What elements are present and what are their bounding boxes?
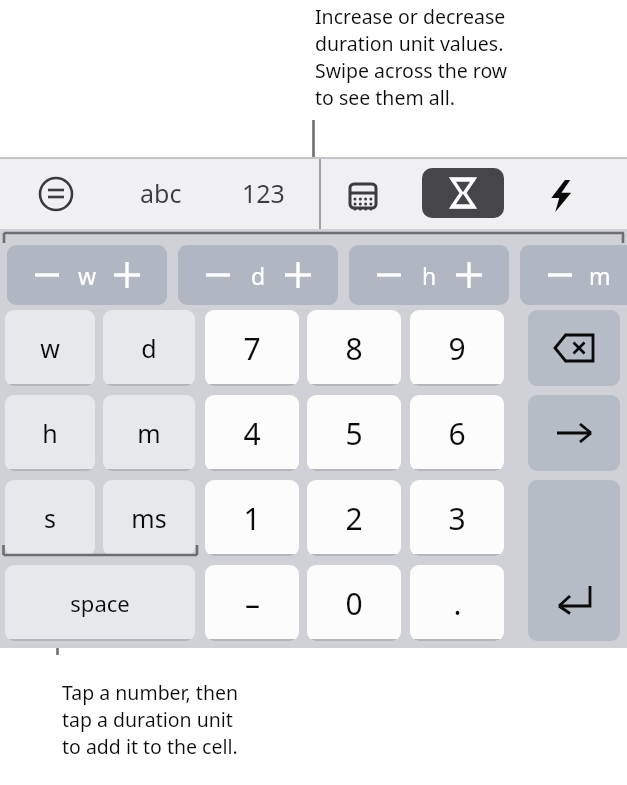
button[interactable]: 0	[307, 565, 401, 641]
button[interactable]: h	[5, 395, 95, 471]
button[interactable]: d	[103, 310, 195, 386]
button[interactable]: Delete	[528, 310, 620, 386]
staticText: 3	[448, 498, 466, 539]
staticText: 8	[345, 328, 363, 369]
staticText: Increase or decrease	[315, 3, 506, 30]
staticText: w	[40, 331, 60, 365]
staticText: 5	[345, 413, 363, 454]
button[interactable]: 6	[410, 395, 504, 471]
staticText: 6	[448, 413, 466, 454]
staticText: ms	[131, 501, 167, 535]
button[interactable]: 7	[205, 310, 299, 386]
button[interactable]: 3	[410, 480, 504, 556]
staticText: w	[78, 260, 97, 291]
button[interactable]: Formulas	[540, 175, 582, 217]
staticText: space	[70, 588, 130, 618]
staticText: –	[245, 583, 260, 624]
button[interactable]: w	[5, 310, 95, 386]
staticText: h	[422, 260, 437, 291]
staticText: Swipe across the row	[315, 57, 508, 84]
button[interactable]: Next cell	[528, 395, 620, 471]
staticText: tap a duration unit	[62, 706, 233, 733]
staticText: to add it to the cell.	[62, 733, 238, 760]
button[interactable]: 9	[410, 310, 504, 386]
button[interactable]: abc	[126, 173, 196, 213]
button[interactable]: Date keyboard	[344, 177, 382, 215]
button[interactable]: 4	[205, 395, 299, 471]
staticText: 1	[243, 498, 261, 539]
staticText: 7	[243, 328, 261, 369]
staticText: duration unit values.	[315, 30, 504, 57]
staticText: d	[251, 260, 266, 291]
staticText: 123	[242, 176, 285, 210]
button[interactable]: 8	[307, 310, 401, 386]
button[interactable]: space	[5, 565, 195, 641]
staticText: d	[141, 331, 157, 365]
staticText: 4	[243, 413, 261, 454]
staticText: 9	[448, 328, 466, 369]
button[interactable]: 2	[307, 480, 401, 556]
button[interactable]: m	[103, 395, 195, 471]
staticText: s	[44, 501, 56, 535]
button[interactable]: Adjust m	[520, 245, 627, 305]
staticText: 0	[345, 583, 363, 624]
button[interactable]: .	[410, 565, 504, 641]
button[interactable]: 123	[228, 173, 298, 213]
button[interactable]: ms	[103, 480, 195, 556]
button[interactable]: Adjust d	[178, 245, 338, 305]
button[interactable]: –	[205, 565, 299, 641]
staticText: m	[589, 260, 611, 291]
staticText: Tap a number, then	[62, 679, 238, 706]
button[interactable]: 1	[205, 480, 299, 556]
button[interactable]: Adjust h	[349, 245, 509, 305]
button[interactable]: Keyboard options	[38, 176, 74, 212]
staticText: m	[137, 416, 161, 450]
button[interactable]: 5	[307, 395, 401, 471]
button[interactable]: s	[5, 480, 95, 556]
staticText: .	[453, 583, 462, 624]
button[interactable]: Return	[528, 480, 620, 641]
staticText: abc	[140, 176, 182, 210]
staticText: to see them all.	[315, 84, 455, 111]
button[interactable]: Adjust w	[7, 245, 167, 305]
staticText: 2	[345, 498, 363, 539]
button[interactable]: Duration keyboard	[422, 168, 504, 218]
staticText: h	[42, 416, 58, 450]
